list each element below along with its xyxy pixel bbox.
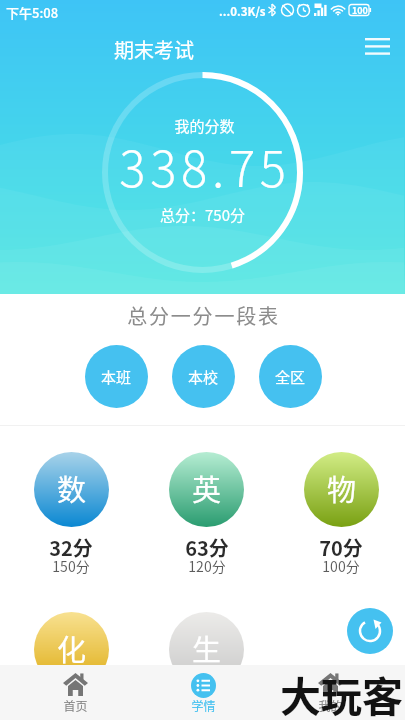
staticText: 下午5:08: [6, 3, 59, 22]
staticText: 英: [192, 467, 222, 509]
staticText: 大玩客: [280, 664, 403, 720]
staticText: 150分: [52, 556, 90, 576]
staticText: 本校: [188, 366, 219, 388]
staticText: 总分：750分: [160, 204, 245, 226]
staticText: ...0.3K/s: [219, 3, 266, 20]
button[interactable]: 英: [169, 452, 244, 527]
staticText: 生: [192, 627, 222, 669]
button[interactable]: 化: [34, 612, 109, 687]
staticText: 学情: [191, 697, 216, 714]
staticText: 我的分数: [174, 115, 235, 137]
button[interactable]: Menu: [357, 26, 397, 66]
button[interactable]: Refresh: [347, 608, 393, 654]
button[interactable]: 我的: [290, 665, 370, 720]
staticText: 本班: [101, 366, 132, 388]
button[interactable]: 本班: [85, 345, 148, 408]
staticText: 首页: [63, 697, 88, 714]
staticText: 338.75: [119, 130, 291, 201]
staticText: 化: [57, 627, 87, 669]
staticText: 数: [57, 467, 87, 509]
staticText: 100: [352, 4, 368, 17]
staticText: 63分: [185, 533, 229, 562]
button[interactable]: 物: [304, 452, 379, 527]
staticText: 物: [327, 467, 357, 509]
staticText: 期末考试: [114, 35, 194, 64]
staticText: 总分一分一段表: [127, 301, 280, 330]
button[interactable]: 全区: [259, 345, 322, 408]
staticText: 120分: [188, 556, 226, 576]
button[interactable]: 学情: [163, 665, 243, 720]
staticText: 32分: [49, 533, 93, 562]
button[interactable]: 首页: [35, 665, 115, 720]
staticText: 100分: [322, 556, 360, 576]
button[interactable]: 数: [34, 452, 109, 527]
staticText: 全区: [275, 366, 306, 388]
button[interactable]: 生: [169, 612, 244, 687]
staticText: 70分: [319, 533, 363, 562]
staticText: 我的: [318, 697, 343, 714]
button[interactable]: 本校: [172, 345, 235, 408]
